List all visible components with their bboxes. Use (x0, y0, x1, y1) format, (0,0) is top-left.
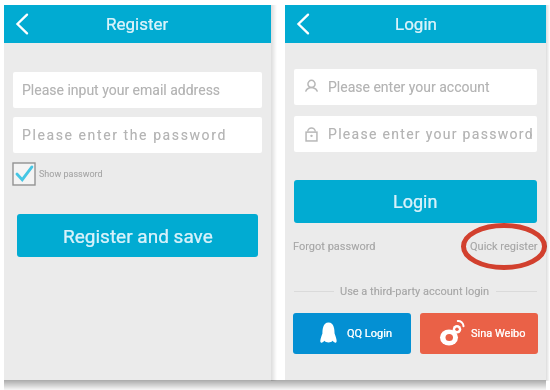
button[interactable]: Forgot password (293, 240, 376, 253)
button[interactable]: Show password (13, 163, 103, 185)
staticText: Sina Weibo (471, 327, 526, 340)
button[interactable]: Please enter your account (294, 69, 537, 105)
button[interactable]: Please enter the password (13, 117, 262, 153)
staticText: Register (106, 14, 169, 34)
button[interactable]: Quick register (470, 240, 538, 253)
staticText: QQ Login (347, 327, 392, 340)
button[interactable]: Back (4, 6, 40, 42)
button[interactable]: Sina Weibo (420, 313, 538, 354)
button[interactable]: QQ Login (293, 313, 411, 354)
staticText: Please enter the password (22, 127, 227, 143)
button[interactable]: Register and save (17, 214, 258, 257)
button[interactable]: Login (294, 180, 537, 223)
button[interactable]: Back (285, 6, 321, 42)
staticText: Please enter your password (328, 126, 534, 142)
staticText: Please input your email address (22, 82, 221, 98)
staticText: Please enter your account (328, 79, 490, 95)
staticText: Login (395, 14, 437, 34)
button[interactable]: Please input your email address (13, 72, 262, 108)
staticText: Show password (39, 169, 103, 180)
button[interactable]: Please enter your password (294, 116, 537, 152)
staticText: Login (393, 191, 438, 212)
staticText: Use a third-party account login (340, 285, 490, 298)
staticText: Register and save (63, 225, 213, 247)
